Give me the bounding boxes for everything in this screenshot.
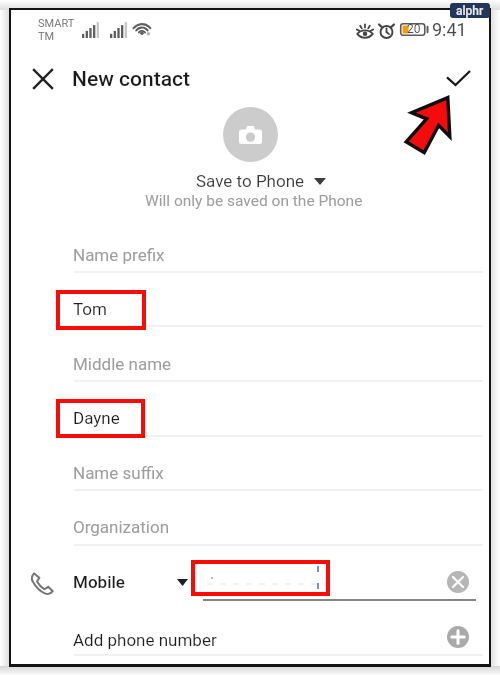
- staticText: alphr: [456, 4, 484, 18]
- staticText: Name prefix: [73, 245, 165, 265]
- staticText: 20: [407, 22, 421, 35]
- button[interactable]: Save to Phone: [196, 171, 326, 191]
- button[interactable]: Add phone number: [447, 626, 469, 648]
- staticText: SMART: [38, 17, 75, 30]
- button[interactable]: Add phone number: [11, 622, 489, 662]
- button[interactable]: Tom: [11, 295, 489, 349]
- staticText: 9:41: [432, 19, 467, 40]
- staticText: TM: [38, 30, 55, 43]
- staticText: Mobile: [73, 572, 125, 592]
- button[interactable]: Save contact: [436, 56, 480, 100]
- button[interactable]: Middle name: [11, 350, 489, 404]
- staticText: Organization: [73, 517, 170, 537]
- button[interactable]: Close: [23, 59, 63, 99]
- button[interactable]: Add photo: [223, 107, 278, 162]
- staticText: Name suffix: [73, 463, 164, 483]
- button[interactable]: Organization: [11, 513, 489, 567]
- button[interactable]: Mobile: [11, 568, 489, 601]
- button[interactable]: Clear number: [447, 571, 469, 593]
- staticText: Will only be saved on the Phone: [145, 192, 363, 210]
- staticText: Dayne: [73, 408, 120, 428]
- staticText: Save to Phone: [196, 171, 305, 191]
- staticText: Add phone number: [73, 630, 217, 650]
- button[interactable]: Dayne: [11, 404, 489, 458]
- button[interactable]: Phone number: [193, 562, 443, 592]
- staticText: New contact: [72, 67, 191, 92]
- staticText: Tom: [73, 299, 107, 319]
- button[interactable]: Name suffix: [11, 459, 489, 513]
- button[interactable]: Name prefix: [11, 241, 489, 295]
- staticText: Middle name: [73, 354, 172, 374]
